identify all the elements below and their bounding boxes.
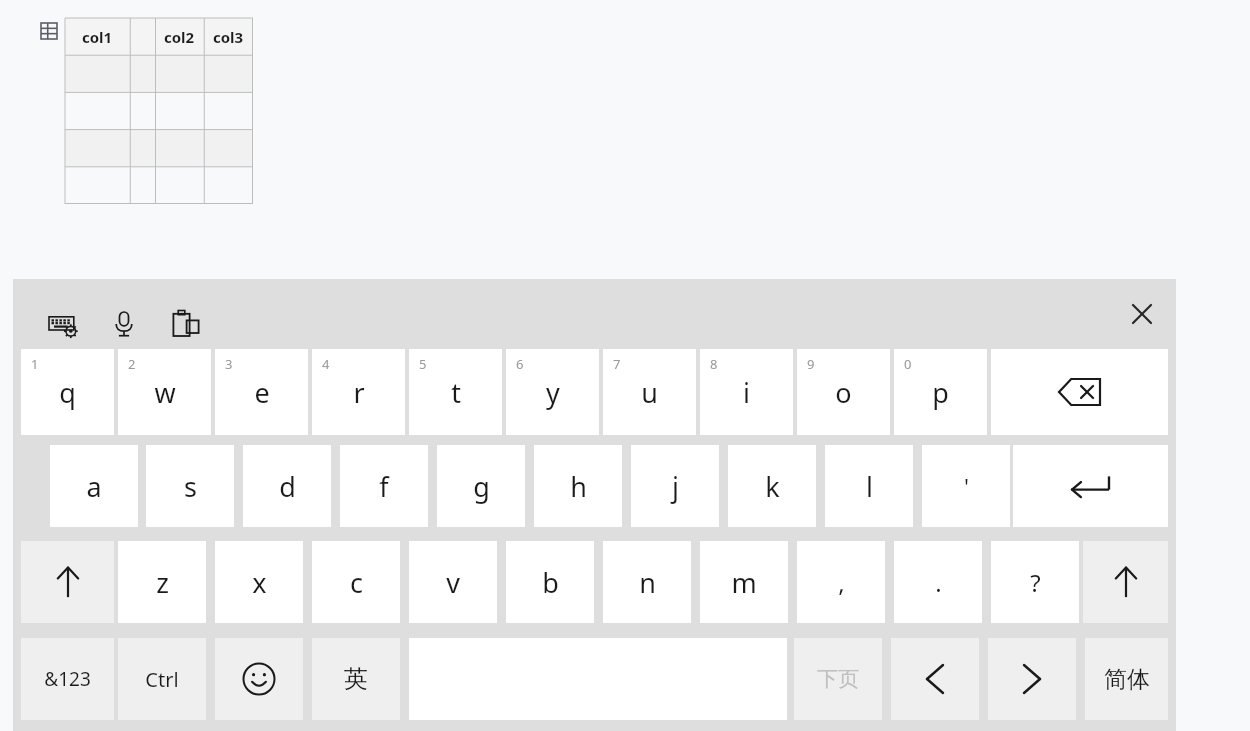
button[interactable]: 0 — [894, 349, 987, 435]
staticText: q — [59, 374, 76, 411]
button[interactable]: Shift — [21, 541, 114, 623]
staticText: 6 — [516, 355, 524, 373]
staticText: n — [639, 564, 656, 601]
button[interactable]: Ctrl — [118, 638, 206, 720]
staticText: u — [641, 374, 658, 411]
button[interactable]: ' — [922, 445, 1010, 527]
staticText: 下页 — [817, 666, 859, 692]
button[interactable]: &123 — [21, 638, 114, 720]
staticText: 7 — [613, 355, 621, 373]
staticText: 9 — [807, 355, 815, 373]
button[interactable]: m — [700, 541, 788, 623]
staticText: s — [184, 468, 197, 505]
button[interactable]: h — [534, 445, 622, 527]
button[interactable]: ? — [991, 541, 1079, 623]
staticText: 0 — [904, 355, 912, 373]
button[interactable]: k — [728, 445, 816, 527]
button[interactable]: 4 — [312, 349, 405, 435]
staticText: . — [935, 566, 942, 599]
button[interactable]: 1 — [21, 349, 114, 435]
staticText: y — [546, 374, 560, 411]
staticText: e — [254, 374, 270, 411]
button[interactable]: g — [437, 445, 525, 527]
staticText: 简体 — [1104, 665, 1150, 694]
staticText: 5 — [419, 355, 427, 373]
staticText: Ctrl — [145, 666, 179, 693]
button[interactable]: Shift — [1083, 541, 1168, 623]
staticText: o — [835, 374, 852, 411]
button[interactable]: , — [797, 541, 885, 623]
staticText: 1 — [31, 355, 39, 373]
button[interactable]: 英 — [312, 638, 400, 720]
staticText: 4 — [322, 355, 330, 373]
staticText: w — [154, 374, 176, 411]
staticText: c — [350, 564, 363, 601]
button[interactable]: j — [631, 445, 719, 527]
staticText: ' — [964, 471, 969, 501]
staticText: g — [473, 468, 490, 505]
staticText: p — [932, 374, 949, 411]
button[interactable]: c — [312, 541, 400, 623]
button[interactable]: Next — [988, 638, 1076, 720]
staticText: col2 — [164, 27, 195, 47]
button[interactable]: Emoji — [215, 638, 303, 720]
button[interactable]: . — [894, 541, 982, 623]
staticText: z — [156, 564, 169, 601]
staticText: j — [672, 468, 679, 505]
button[interactable]: Voice input — [101, 301, 147, 347]
staticText: h — [570, 468, 587, 505]
staticText: v — [446, 564, 460, 601]
button[interactable]: x — [215, 541, 303, 623]
button[interactable]: v — [409, 541, 497, 623]
button[interactable]: b — [506, 541, 594, 623]
staticText: r — [353, 374, 365, 411]
button[interactable]: 8 — [700, 349, 793, 435]
button[interactable]: z — [118, 541, 206, 623]
staticText: a — [86, 468, 102, 505]
button[interactable]: 9 — [797, 349, 890, 435]
staticText: b — [542, 564, 559, 601]
staticText: col1 — [82, 27, 113, 47]
staticText: 3 — [225, 355, 233, 373]
button[interactable]: Enter — [1013, 445, 1168, 527]
staticText: m — [731, 564, 757, 601]
staticText: k — [765, 468, 780, 505]
staticText: t — [451, 374, 461, 411]
button[interactable]: d — [243, 445, 331, 527]
staticText: l — [866, 468, 873, 505]
button[interactable]: Backspace — [991, 349, 1168, 435]
staticText: &123 — [44, 666, 91, 692]
staticText: 2 — [128, 355, 136, 373]
staticText: f — [379, 468, 389, 505]
button[interactable]: a — [50, 445, 138, 527]
staticText: 英 — [344, 664, 368, 694]
staticText: d — [279, 468, 296, 505]
button[interactable]: 2 — [118, 349, 211, 435]
button[interactable]: s — [146, 445, 234, 527]
button[interactable]: 下页 — [794, 638, 882, 720]
button[interactable]: f — [340, 445, 428, 527]
staticText: ? — [1030, 566, 1041, 599]
staticText: 8 — [710, 355, 718, 373]
button[interactable]: Previous — [891, 638, 979, 720]
button[interactable]: Clipboard — [163, 301, 209, 347]
button[interactable]: n — [603, 541, 691, 623]
staticText: col3 — [213, 27, 244, 47]
button[interactable]: Close keyboard — [1117, 289, 1167, 339]
staticText: i — [743, 374, 750, 411]
staticText: , — [838, 566, 845, 599]
button[interactable]: 5 — [409, 349, 502, 435]
button[interactable]: 7 — [603, 349, 696, 435]
button[interactable]: 简体 — [1085, 638, 1168, 720]
button[interactable]: 3 — [215, 349, 308, 435]
button[interactable]: l — [825, 445, 913, 527]
button[interactable]: Keyboard settings — [40, 301, 86, 347]
staticText: x — [252, 564, 267, 601]
button[interactable]: 6 — [506, 349, 599, 435]
